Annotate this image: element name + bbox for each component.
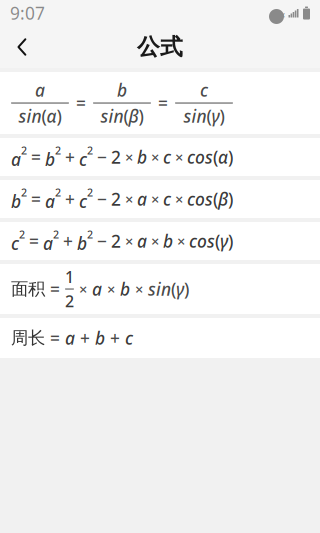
staticText: − — [97, 187, 107, 210]
staticText: + — [80, 326, 90, 349]
staticText: ( — [123, 104, 128, 127]
button[interactable]: a — [0, 72, 320, 134]
staticText: × — [107, 279, 115, 299]
button[interactable]: a — [0, 138, 320, 176]
staticText: cos — [189, 229, 215, 252]
button[interactable]: b — [0, 180, 320, 218]
staticText: c — [163, 187, 171, 210]
staticText: 2 — [55, 185, 61, 199]
staticText: × — [177, 231, 185, 251]
staticText: ( — [206, 104, 211, 127]
staticText: ) — [228, 187, 233, 210]
staticText: 1 — [65, 266, 74, 287]
staticText: b — [163, 229, 173, 252]
staticText: = — [50, 277, 60, 300]
staticText: = — [158, 91, 168, 114]
staticText: γ — [176, 277, 184, 300]
staticText: 2 — [87, 185, 93, 199]
staticText: c — [125, 326, 133, 349]
button[interactable]: 周长 — [0, 318, 320, 358]
staticText: a — [11, 148, 21, 171]
staticText: × — [151, 147, 159, 167]
staticText: sin — [100, 104, 123, 127]
staticText: × — [125, 147, 133, 167]
staticText: = — [76, 91, 86, 114]
staticText: 9:07 — [10, 1, 45, 24]
button[interactable]: 返回 — [0, 26, 44, 68]
staticText: ) — [184, 277, 189, 300]
staticText: a — [35, 78, 45, 101]
staticText: b — [95, 326, 105, 349]
staticText: x — [281, 10, 285, 19]
staticText: = — [31, 145, 41, 168]
staticText: ( — [41, 104, 46, 127]
staticText: a — [43, 232, 53, 255]
staticText: × — [151, 189, 159, 209]
staticText: 面积 — [11, 278, 45, 300]
staticText: + — [65, 145, 75, 168]
staticText: × — [151, 231, 159, 251]
staticText: + — [63, 229, 73, 252]
staticText: − — [97, 229, 107, 252]
staticText: cos — [187, 187, 213, 210]
staticText: + — [110, 326, 120, 349]
staticText: γ — [211, 104, 219, 127]
staticText: × — [135, 279, 143, 299]
staticText: cos — [187, 145, 213, 168]
staticText: = — [29, 229, 39, 252]
staticText: a — [137, 187, 147, 210]
staticText: = — [31, 187, 41, 210]
staticText: a — [92, 277, 102, 300]
staticText: c — [79, 190, 87, 213]
staticText: β — [218, 187, 228, 210]
staticText: α — [46, 104, 56, 127]
staticText: α — [218, 145, 228, 168]
staticText: × — [175, 189, 183, 209]
staticText: 周长 — [11, 327, 45, 349]
staticText: 公式 — [137, 33, 183, 61]
staticText: a — [65, 326, 75, 349]
staticText: ) — [228, 229, 233, 252]
staticText: sin — [148, 277, 171, 300]
staticText: 2 — [111, 229, 121, 252]
staticText: b — [137, 145, 147, 168]
staticText: a — [137, 229, 147, 252]
staticText: ) — [138, 104, 143, 127]
staticText: sin — [183, 104, 206, 127]
staticText: − — [97, 145, 107, 168]
staticText: 2 — [21, 185, 27, 199]
staticText: + — [65, 187, 75, 210]
staticText: 2 — [111, 145, 121, 168]
staticText: 2 — [87, 227, 93, 241]
staticText: β — [128, 104, 138, 127]
staticText: c — [200, 78, 208, 101]
staticText: a — [45, 190, 55, 213]
staticText: 2 — [53, 227, 59, 241]
staticText: b — [120, 277, 130, 300]
staticText: 2 — [21, 143, 27, 157]
staticText: 2 — [19, 227, 25, 241]
staticText: c — [163, 145, 171, 168]
staticText: × — [125, 231, 133, 251]
staticText: × — [125, 189, 133, 209]
staticText: = — [50, 326, 60, 349]
button[interactable]: 面积 — [0, 264, 320, 314]
staticText: sin — [18, 104, 41, 127]
staticText: b — [117, 78, 127, 101]
staticText: b — [11, 190, 21, 213]
staticText: b — [77, 232, 87, 255]
staticText: 2 — [65, 290, 74, 312]
staticText: × — [175, 147, 183, 167]
staticText: × — [79, 279, 87, 299]
staticText: 2 — [55, 143, 61, 157]
staticText: 2 — [111, 187, 121, 210]
staticText: ( — [215, 229, 220, 252]
staticText: γ — [220, 229, 228, 252]
staticText: ) — [228, 145, 233, 168]
button[interactable]: c — [0, 222, 320, 260]
staticText: c — [79, 148, 87, 171]
staticText: ) — [56, 104, 61, 127]
staticText: b — [45, 148, 55, 171]
staticText: ( — [213, 145, 218, 168]
staticText: ( — [213, 187, 218, 210]
